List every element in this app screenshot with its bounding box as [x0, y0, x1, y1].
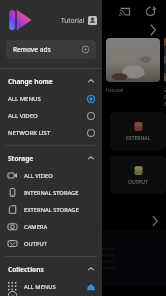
staticText: ALL VIDEO	[8, 112, 38, 120]
button[interactable]	[0, 230, 166, 286]
button[interactable]: OUTPUT	[110, 156, 166, 194]
button[interactable]: Change home	[0, 72, 102, 90]
button[interactable]: Tutorial	[61, 16, 97, 25]
staticText: Remove ads	[13, 45, 51, 54]
staticText: OUTPUT	[24, 240, 47, 248]
staticText: NETWORK LIST	[8, 129, 51, 137]
button[interactable]: App logo	[6, 6, 34, 34]
button[interactable]: Remove ads	[6, 40, 96, 59]
staticText: Tutorial	[61, 16, 85, 25]
staticText: ALL MENUS	[24, 283, 56, 291]
button[interactable]: INTERNAL STORAGE	[0, 184, 102, 201]
button[interactable]: Storage	[0, 149, 102, 167]
staticText: Storage	[8, 154, 34, 163]
button[interactable]: EXTERNAL	[110, 112, 166, 150]
button[interactable]: OUTPUT	[0, 235, 102, 252]
button[interactable]	[164, 38, 166, 82]
staticText: Collections	[8, 265, 44, 274]
staticText: house	[106, 86, 124, 94]
button[interactable]: Cast	[114, 1, 134, 21]
staticText: CAMERA	[24, 223, 48, 231]
staticText: 20 6	[164, 86, 166, 106]
button[interactable]: More recent	[146, 23, 160, 37]
staticText: ALL VIDEO	[24, 172, 53, 180]
button[interactable]: Refresh	[140, 1, 160, 21]
button[interactable]: More	[148, 214, 162, 228]
staticText: EXTERNAL STORAGE	[24, 206, 79, 214]
button[interactable]: ALL MENUS	[0, 278, 102, 295]
staticText: INTERNAL STORAGE	[24, 189, 79, 197]
button[interactable]: CAMERA	[0, 218, 102, 235]
button[interactable]: RECENT VIDEO	[0, 295, 102, 296]
button[interactable]: NETWORK LIST	[0, 124, 102, 141]
button[interactable]	[106, 38, 160, 82]
staticText: OUTPUT	[128, 179, 148, 186]
staticText: Change home	[8, 77, 53, 86]
button[interactable]: Collections	[0, 260, 102, 278]
staticText: TE	[4, 217, 11, 225]
staticText: ALL MENUS	[8, 95, 41, 103]
staticText: EXTERNAL	[126, 135, 150, 142]
button[interactable]: ALL VIDEO	[0, 107, 102, 124]
button[interactable]: EXTERNAL STORAGE	[0, 201, 102, 218]
button[interactable]: ALL MENUS	[0, 90, 102, 107]
button[interactable]: ALL VIDEO	[0, 167, 102, 184]
